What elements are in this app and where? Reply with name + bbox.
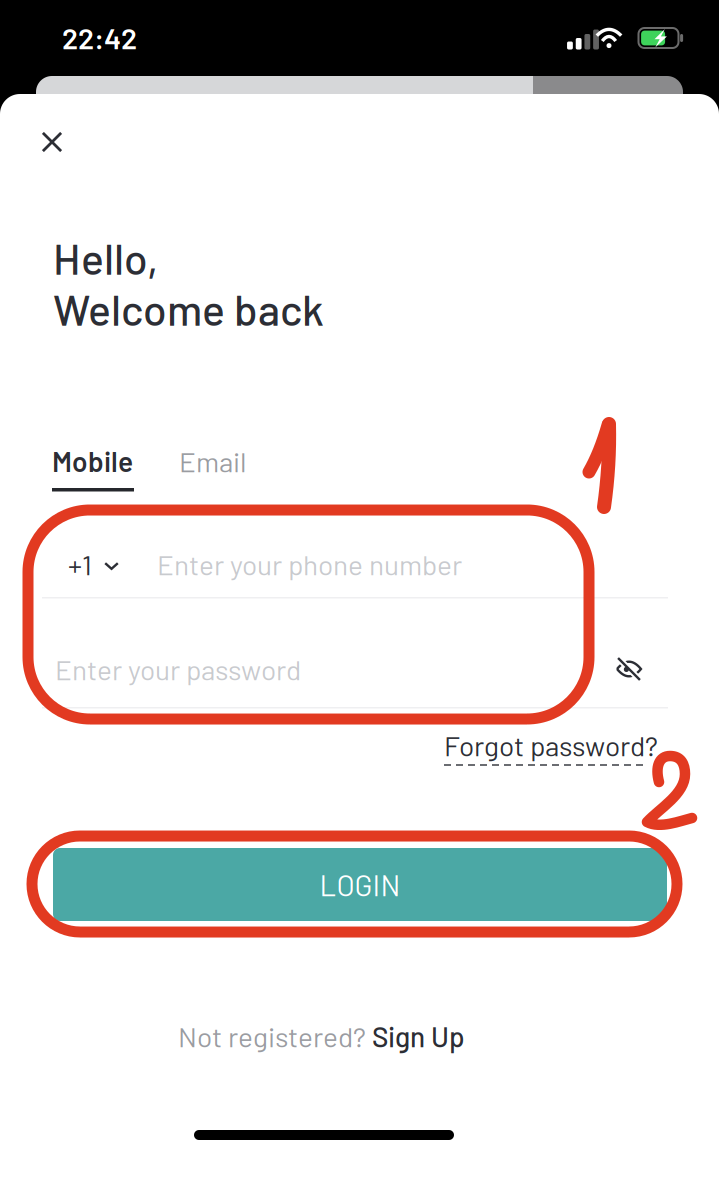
staticText: Email — [179, 444, 246, 478]
staticText: +1 — [68, 547, 92, 581]
button[interactable]: LOGIN — [53, 848, 667, 921]
staticText: 22:42 — [62, 20, 137, 55]
button[interactable]: Close — [20, 117, 84, 167]
staticText: Not registered? — [178, 1019, 372, 1053]
staticText: Forgot password? — [444, 728, 658, 762]
staticText: Enter your password — [55, 652, 301, 686]
staticText: Welcome back — [53, 283, 324, 334]
button[interactable]: Show password — [602, 644, 656, 694]
button[interactable]: Mobile — [52, 444, 134, 491]
staticText: Hello, — [53, 232, 158, 283]
button[interactable]: Email — [179, 444, 251, 478]
button[interactable]: Select country code — [68, 547, 124, 581]
button[interactable]: Forgot password? — [444, 728, 660, 766]
staticText: Enter your phone number — [157, 547, 462, 581]
staticText: Sign Up — [372, 1019, 465, 1053]
button[interactable]: Sign Up — [372, 1019, 465, 1053]
staticText: Mobile — [52, 444, 133, 478]
staticText: LOGIN — [319, 867, 400, 902]
